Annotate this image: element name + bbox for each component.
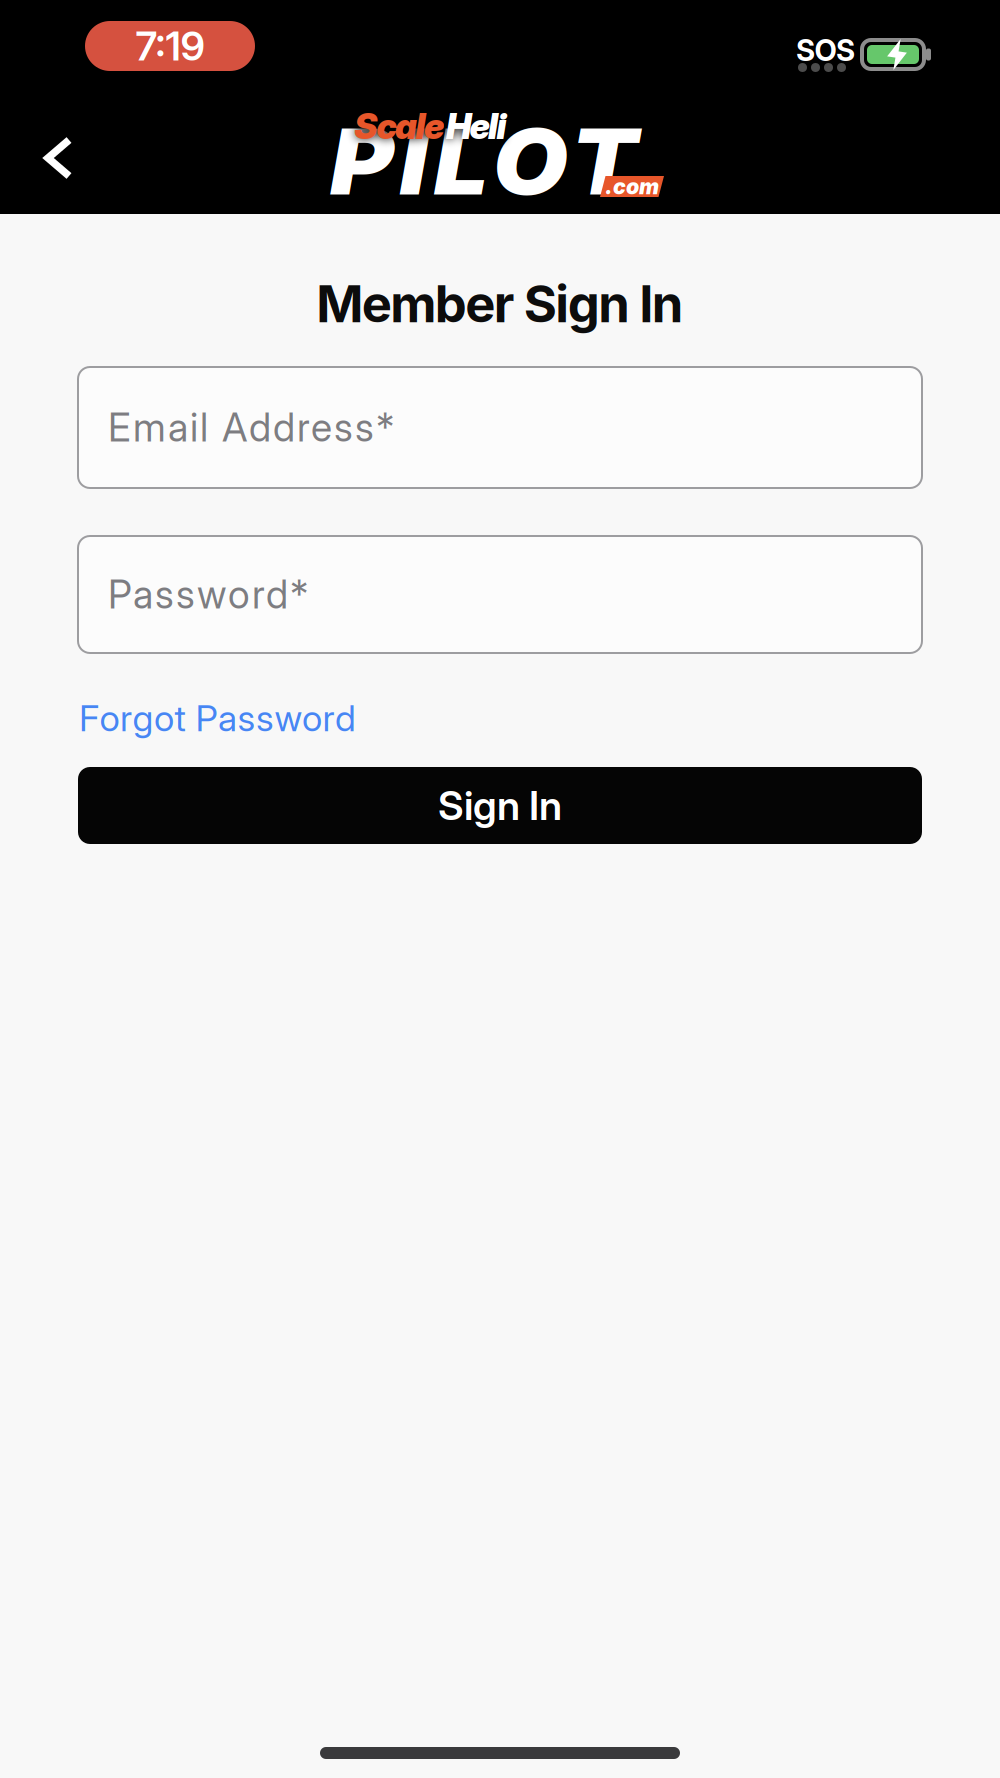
staticText: Password* <box>108 572 308 617</box>
button[interactable]: Password* <box>78 536 922 653</box>
staticText: PILOT <box>330 108 617 215</box>
staticText: Member Sign In <box>316 274 684 334</box>
button[interactable]: 7:19 <box>85 21 255 71</box>
button[interactable]: Sign In <box>78 767 922 844</box>
staticText: Scale <box>354 106 444 147</box>
staticText: Heli <box>446 106 506 147</box>
staticText: .com <box>605 174 659 199</box>
staticText: Sign In <box>438 782 562 829</box>
staticText: Forgot Password <box>79 697 356 739</box>
staticText: 7:19 <box>135 22 204 70</box>
staticText: SOS <box>796 33 855 68</box>
button[interactable] <box>44 140 69 176</box>
button[interactable]: Email Address* <box>78 367 922 488</box>
button[interactable]: Forgot Password <box>79 697 356 739</box>
staticText: Email Address* <box>108 405 394 450</box>
